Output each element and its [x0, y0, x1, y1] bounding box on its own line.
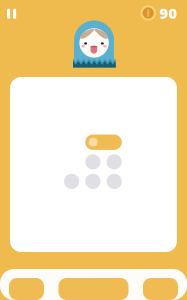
button[interactable]: Play [58, 278, 128, 300]
staticText: 90 [159, 3, 177, 23]
button[interactable]: Shuffle [143, 278, 178, 300]
button[interactable]: Hint [9, 278, 44, 300]
button[interactable]: Coins: 90 [140, 4, 177, 22]
button[interactable]: Pause [1, 3, 23, 25]
